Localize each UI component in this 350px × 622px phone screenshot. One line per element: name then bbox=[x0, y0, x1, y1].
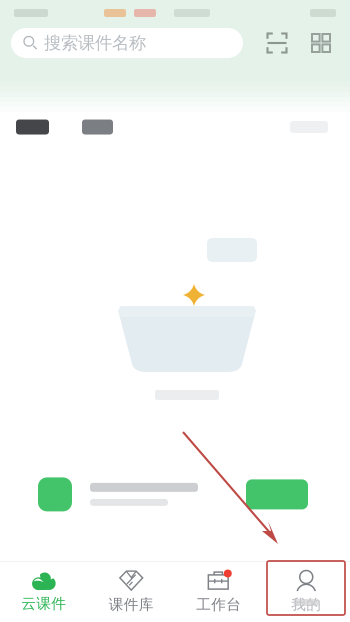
staticText: 我的 bbox=[291, 595, 321, 613]
button[interactable]: 我的 bbox=[262, 561, 350, 622]
button[interactable]: 分类 bbox=[310, 32, 332, 54]
button[interactable]: 云课件 bbox=[0, 562, 87, 621]
button[interactable]: 扫一扫 bbox=[266, 32, 288, 54]
button[interactable]: 课件库 bbox=[87, 561, 175, 622]
staticText: 搜索课件名称 bbox=[44, 32, 146, 54]
button[interactable]: 立即体验 bbox=[246, 479, 308, 509]
button[interactable]: 工作台 bbox=[175, 561, 262, 622]
button[interactable]: 全部课件 bbox=[16, 119, 49, 134]
button[interactable]: 我的收藏 bbox=[82, 119, 113, 134]
staticText: 云课件 bbox=[21, 594, 66, 612]
staticText: 工作台 bbox=[196, 595, 241, 613]
staticText: 课件库 bbox=[109, 595, 154, 613]
